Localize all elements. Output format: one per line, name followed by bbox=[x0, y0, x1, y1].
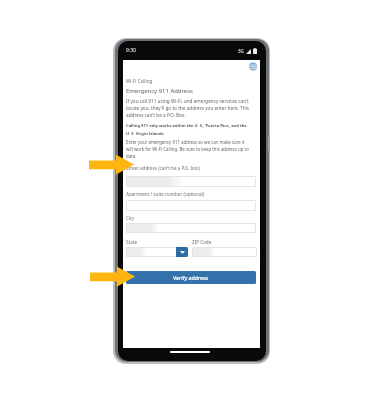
staticText: Apartment / suite number (optional) bbox=[126, 191, 205, 197]
button[interactable]: State bbox=[126, 247, 188, 257]
staticText: locate you, they'll go to the address yo… bbox=[126, 105, 250, 111]
button[interactable] bbox=[192, 247, 257, 257]
staticText: date. bbox=[126, 153, 137, 159]
staticText: State bbox=[126, 239, 138, 245]
staticText: ZIP Code bbox=[192, 239, 212, 245]
staticText: Enter your emergency 911 address so we c… bbox=[126, 139, 245, 145]
staticText: Calling 911 only works within the U. S.,… bbox=[126, 123, 247, 129]
staticText: City bbox=[126, 215, 135, 221]
staticText: Street address (can't be a P.O. box) bbox=[126, 165, 200, 171]
staticText: Emergency 911 Address bbox=[126, 87, 193, 95]
button[interactable] bbox=[126, 223, 256, 233]
staticText: 9:30 bbox=[126, 47, 136, 54]
staticText: 3G bbox=[238, 48, 244, 54]
staticText: Verify address bbox=[173, 274, 209, 281]
staticText: If you call 911 using Wi-Fi, and emergen… bbox=[126, 98, 249, 104]
button[interactable]: Verify address bbox=[126, 271, 256, 284]
button[interactable] bbox=[126, 200, 256, 211]
button[interactable] bbox=[126, 176, 256, 187]
other: Pointer arrow bbox=[89, 154, 134, 175]
staticText: will work for Wi-Fi Calling. Be sure to … bbox=[126, 146, 249, 152]
staticText: address can't be a P.O. Box. bbox=[126, 112, 186, 118]
staticText: U. S. Virgin Islands. bbox=[126, 131, 165, 137]
other: Pointer arrow bbox=[90, 266, 135, 287]
button[interactable]: Help bbox=[249, 62, 257, 71]
staticText: Wi-Fi Calling bbox=[126, 78, 153, 84]
